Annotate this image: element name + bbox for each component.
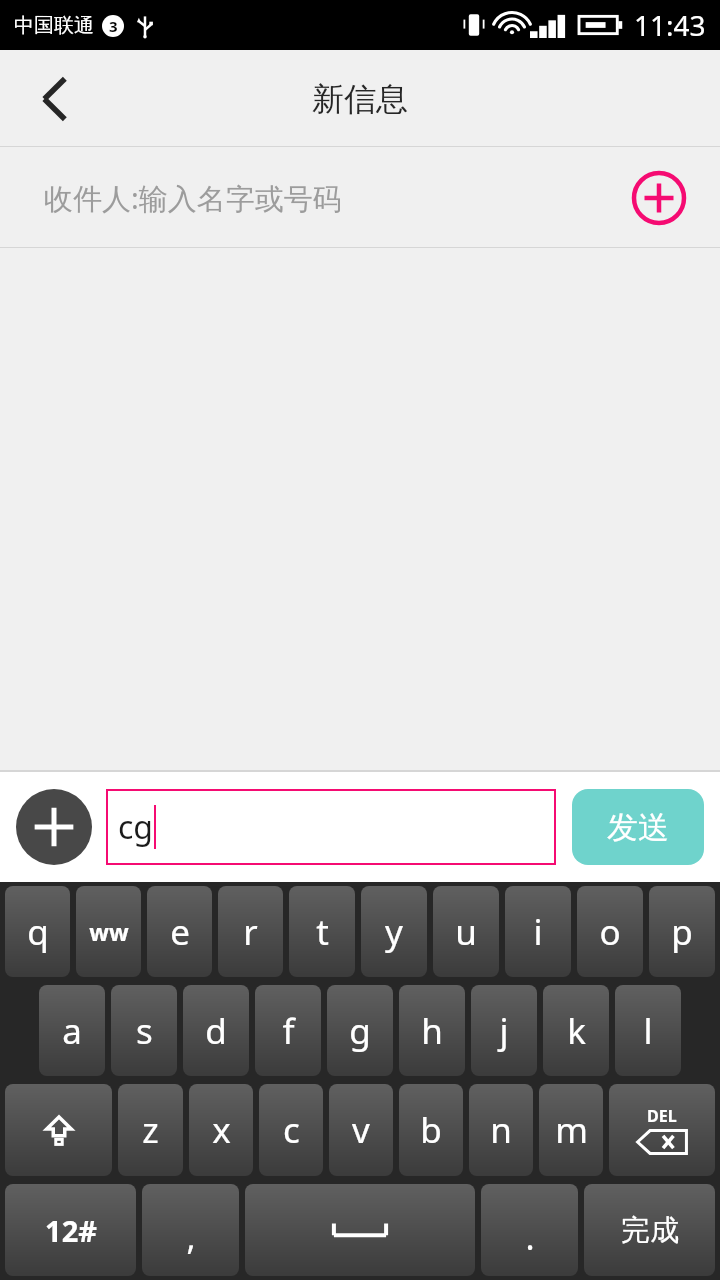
staticText: 发送	[607, 808, 669, 847]
staticText: s	[136, 1007, 153, 1055]
button[interactable]: z	[118, 1084, 183, 1176]
button[interactable]: f	[255, 985, 321, 1076]
staticText: 新信息	[312, 79, 408, 119]
staticText: o	[599, 908, 621, 956]
staticText: 12#	[45, 1211, 97, 1250]
staticText: p	[671, 908, 693, 956]
button[interactable]: r	[218, 886, 283, 977]
staticText: i	[533, 908, 543, 956]
button[interactable]: u	[433, 886, 499, 977]
staticText: DEL	[647, 1105, 677, 1127]
staticText: z	[142, 1106, 159, 1154]
staticText: f	[282, 1007, 295, 1055]
button[interactable]: Add recipient	[624, 163, 694, 233]
staticText: ww	[89, 916, 129, 947]
staticText: a	[62, 1007, 82, 1055]
staticText: b	[420, 1106, 442, 1154]
button[interactable]: j	[471, 985, 537, 1076]
button[interactable]: a	[39, 985, 105, 1076]
button[interactable]: q	[5, 886, 70, 977]
button[interactable]: Add attachment	[16, 789, 92, 865]
button[interactable]: c	[259, 1084, 323, 1176]
button[interactable]: l	[615, 985, 681, 1076]
button[interactable]: cg	[106, 789, 556, 865]
button[interactable]: Back	[0, 50, 110, 147]
staticText: 收件人:输入名字或号码	[44, 178, 342, 218]
button[interactable]: .	[481, 1184, 578, 1276]
staticText: 中国联通	[14, 13, 94, 38]
button[interactable]: b	[399, 1084, 463, 1176]
staticText: c	[283, 1106, 300, 1154]
staticText: m	[555, 1106, 588, 1154]
staticText: q	[27, 908, 49, 956]
staticText: .	[525, 1214, 535, 1260]
button[interactable]: m	[539, 1084, 603, 1176]
button[interactable]: k	[543, 985, 609, 1076]
button[interactable]: 完成	[584, 1184, 715, 1276]
button[interactable]: y	[361, 886, 427, 977]
button[interactable]: i	[505, 886, 571, 977]
button[interactable]: ,	[142, 1184, 239, 1276]
button[interactable]: Shift	[5, 1084, 112, 1176]
button[interactable]: p	[649, 886, 715, 977]
staticText: u	[455, 908, 477, 956]
button[interactable]: e	[147, 886, 212, 977]
staticText: k	[567, 1007, 586, 1055]
button[interactable]: h	[399, 985, 465, 1076]
staticText: j	[499, 1007, 509, 1055]
staticText: e	[170, 908, 190, 956]
button[interactable]: o	[577, 886, 643, 977]
staticText: t	[316, 908, 329, 956]
staticText: g	[349, 1007, 371, 1055]
button[interactable]: t	[289, 886, 355, 977]
button[interactable]: ww	[76, 886, 141, 977]
button[interactable]: 收件人:输入名字或号码	[0, 147, 720, 248]
button[interactable]: 12#	[5, 1184, 136, 1276]
staticText: 11:43	[634, 6, 706, 44]
staticText: r	[243, 908, 258, 956]
staticText: v	[352, 1106, 370, 1154]
button[interactable]: n	[469, 1084, 533, 1176]
button[interactable]: v	[329, 1084, 393, 1176]
button[interactable]: x	[189, 1084, 253, 1176]
button[interactable]: s	[111, 985, 177, 1076]
button[interactable]: d	[183, 985, 249, 1076]
staticText: 3	[109, 16, 118, 36]
button[interactable]: Space	[245, 1184, 475, 1276]
staticText: l	[643, 1007, 653, 1055]
staticText: d	[205, 1007, 227, 1055]
staticText: y	[385, 908, 403, 956]
button[interactable]: 发送	[572, 789, 704, 865]
staticText: n	[490, 1106, 512, 1154]
button[interactable]: g	[327, 985, 393, 1076]
staticText: x	[212, 1106, 231, 1154]
staticText: h	[421, 1007, 443, 1055]
button[interactable]: Delete	[609, 1084, 715, 1176]
staticText: ,	[186, 1214, 196, 1260]
staticText: cg	[118, 805, 154, 849]
staticText: 完成	[621, 1212, 679, 1249]
